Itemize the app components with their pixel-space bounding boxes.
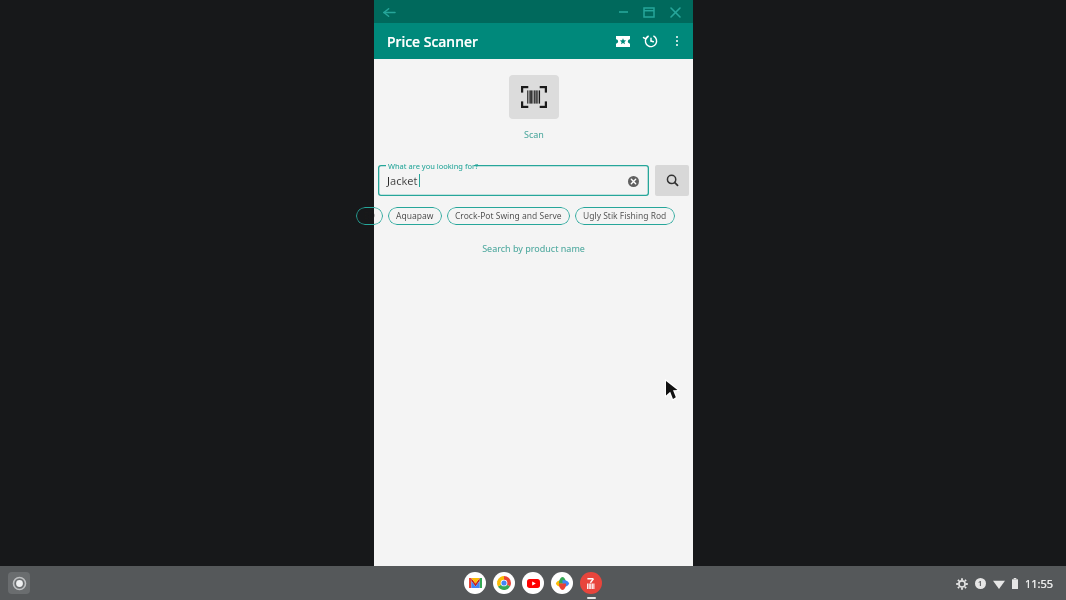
staticText: Ugly Stik Fishing Rod <box>583 210 667 222</box>
button[interactable]: Photos <box>551 572 573 594</box>
staticText: Price Scanner <box>387 32 478 51</box>
button[interactable]: History <box>637 27 665 55</box>
button[interactable]: Chrome <box>493 572 515 594</box>
button[interactable]: Search by product name <box>476 240 591 256</box>
button[interactable]: Ugly Stik Fishing Rod <box>575 207 675 225</box>
button[interactable]: Aquapaw <box>388 207 442 225</box>
button[interactable]: Launcher <box>8 572 30 594</box>
button[interactable]: ED <box>356 207 383 225</box>
staticText: What are you looking for? <box>388 161 479 171</box>
button[interactable]: Deals <box>609 27 637 55</box>
staticText: 11:55 <box>1025 576 1054 591</box>
staticText: Search by product name <box>482 242 585 254</box>
button[interactable]: More options <box>665 29 689 53</box>
button[interactable]: Gmail <box>464 572 486 594</box>
button[interactable]: System tray <box>956 576 1054 591</box>
staticText: Scan <box>524 128 544 140</box>
staticText: Crock-Pot Swing and Serve <box>455 210 562 222</box>
staticText: ED <box>364 210 375 222</box>
button[interactable]: Scan <box>507 73 561 142</box>
staticText: Jacket <box>387 173 418 188</box>
button[interactable]: Close <box>663 1 687 23</box>
button[interactable]: Crock-Pot Swing and Serve <box>447 207 570 225</box>
button[interactable]: Price Scanner <box>580 572 602 594</box>
button[interactable]: Clear <box>624 172 642 190</box>
staticText: Aquapaw <box>396 210 434 222</box>
button[interactable]: YouTube <box>522 572 544 594</box>
button[interactable]: Back <box>378 1 400 23</box>
button[interactable]: Search <box>655 165 689 196</box>
button[interactable]: Maximize <box>637 1 661 23</box>
staticText: 1 <box>978 579 983 589</box>
button[interactable]: Minimize <box>611 1 635 23</box>
